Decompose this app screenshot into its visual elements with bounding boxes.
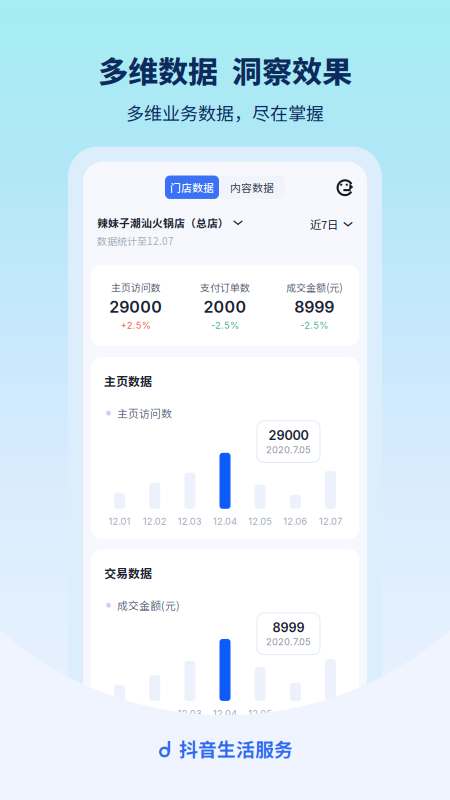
staticText: 12.01 bbox=[109, 516, 131, 527]
staticText: 12.04 bbox=[213, 708, 237, 719]
staticText: 抖音生活服务 bbox=[179, 735, 293, 762]
staticText: 门店数据 bbox=[170, 179, 214, 195]
button[interactable]: 门店数据 bbox=[165, 175, 219, 199]
staticText: 29000 bbox=[109, 297, 162, 317]
staticText: 12.05 bbox=[248, 516, 272, 527]
staticText: 12.07 bbox=[319, 516, 342, 527]
staticText: 成交金额(元) bbox=[117, 597, 180, 613]
staticText: 交易数据 bbox=[104, 564, 152, 581]
staticText: 多维数据 洞察效果 bbox=[98, 48, 352, 91]
staticText: 2020.7.05 bbox=[266, 636, 311, 648]
staticText: 数据统计至12.07 bbox=[97, 233, 174, 248]
staticText: 主页访问数 bbox=[117, 405, 172, 421]
staticText: 主页数据 bbox=[104, 372, 152, 389]
staticText: 12.02 bbox=[143, 516, 167, 527]
staticText: 12.04 bbox=[213, 516, 237, 527]
staticText: 主页访问数 bbox=[111, 280, 161, 294]
staticText: 12.03 bbox=[178, 708, 202, 719]
staticText: 多维业务数据，尽在掌握 bbox=[126, 99, 324, 125]
staticText: -2.5% bbox=[211, 320, 239, 331]
button[interactable]: 近7日 bbox=[310, 216, 353, 232]
staticText: 辣妹子潮汕火锅店（总店） bbox=[97, 215, 229, 230]
staticText: 29000 bbox=[268, 428, 308, 443]
staticText: 12.05 bbox=[248, 708, 272, 719]
staticText: 2000 bbox=[203, 297, 246, 317]
button[interactable]: 内容数据 bbox=[219, 175, 285, 199]
staticText: 内容数据 bbox=[230, 179, 274, 195]
staticText: 12.06 bbox=[283, 516, 307, 527]
staticText: 近7日 bbox=[310, 216, 338, 232]
staticText: +2.5% bbox=[121, 320, 151, 331]
button[interactable]: 辣妹子潮汕火锅店（总店） bbox=[97, 215, 243, 248]
staticText: 成交金额(元) bbox=[286, 280, 342, 294]
staticText: 8999 bbox=[294, 297, 334, 317]
button[interactable]: Customer service bbox=[336, 178, 355, 197]
staticText: 支付订单数 bbox=[200, 280, 250, 294]
staticText: 2020.7.05 bbox=[266, 444, 311, 455]
staticText: 12.03 bbox=[178, 516, 202, 527]
staticText: -2.5% bbox=[300, 320, 328, 331]
staticText: 8999 bbox=[272, 620, 304, 635]
